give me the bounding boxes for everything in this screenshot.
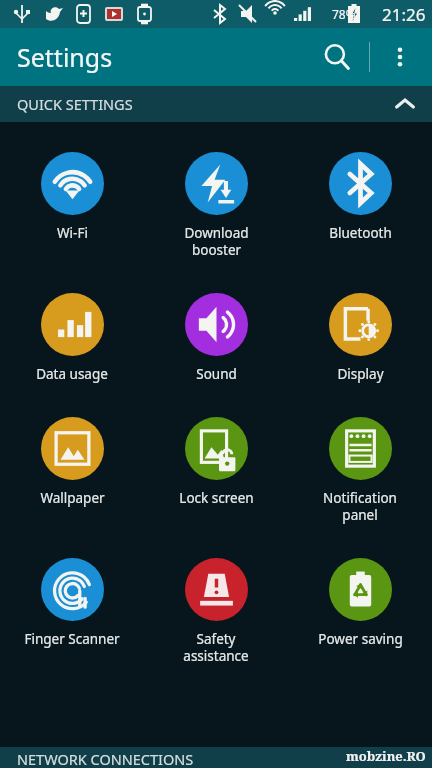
button[interactable]: Sound bbox=[144, 293, 288, 383]
button[interactable]: Data usage bbox=[0, 293, 144, 383]
staticText: 78% bbox=[332, 6, 356, 22]
staticText: 21:26 bbox=[382, 3, 426, 26]
staticText: Lock screen bbox=[179, 489, 254, 507]
staticText: Sound bbox=[196, 365, 237, 383]
button[interactable]: Download booster bbox=[144, 152, 288, 259]
button[interactable]: Display bbox=[288, 293, 432, 383]
button[interactable]: Safety assistance bbox=[144, 558, 288, 665]
button[interactable]: Finger Scanner bbox=[0, 558, 144, 648]
staticText: Notification panel bbox=[323, 489, 397, 524]
staticText: Safety assistance bbox=[183, 630, 249, 665]
button[interactable]: More options bbox=[380, 37, 420, 77]
staticText: Display bbox=[337, 365, 384, 383]
button[interactable]: Search bbox=[314, 34, 360, 80]
button[interactable]: QUICK SETTINGS bbox=[0, 86, 432, 122]
button[interactable]: Power saving bbox=[288, 558, 432, 648]
staticText: Wallpaper bbox=[40, 489, 105, 507]
button[interactable]: Bluetooth bbox=[288, 152, 432, 242]
staticText: Wi-Fi bbox=[57, 224, 88, 242]
button[interactable]: Lock screen bbox=[144, 417, 288, 507]
staticText: Finger Scanner bbox=[24, 630, 120, 648]
button[interactable]: NETWORK CONNECTIONS bbox=[0, 747, 432, 768]
button[interactable]: Notification panel bbox=[288, 417, 432, 524]
button[interactable]: Wallpaper bbox=[0, 417, 144, 507]
staticText: Bluetooth bbox=[329, 224, 392, 242]
staticText: Settings bbox=[17, 40, 113, 74]
staticText: Download booster bbox=[184, 224, 249, 259]
staticText: mobzine.RO bbox=[346, 747, 426, 765]
staticText: QUICK SETTINGS bbox=[17, 94, 133, 114]
staticText: Data usage bbox=[36, 365, 108, 383]
staticText: NETWORK CONNECTIONS bbox=[17, 749, 194, 768]
button[interactable]: Wi-Fi bbox=[0, 152, 144, 242]
staticText: Power saving bbox=[318, 630, 403, 648]
